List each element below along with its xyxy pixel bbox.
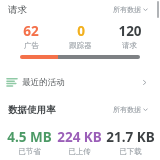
staticText: 所有数据 (113, 105, 141, 114)
button[interactable]: 所有数据 (111, 3, 150, 16)
staticText: 62 (23, 22, 39, 40)
staticText: 最近的活动 (22, 77, 65, 88)
staticText: 请求 (8, 4, 27, 16)
staticText: 120 (118, 22, 142, 40)
staticText: 所有数据 (113, 5, 141, 14)
staticText: 已上传 (68, 147, 91, 156)
staticText: 跟踪器 (69, 41, 92, 50)
button[interactable]: 224 KB (54, 128, 105, 156)
other: 打开最近的活动 (141, 79, 148, 86)
staticText: 已下载 (119, 147, 142, 156)
button[interactable]: 120 (105, 22, 154, 50)
button[interactable]: 0 (56, 22, 105, 50)
staticText: 0 (77, 22, 85, 40)
button[interactable]: 4.5 MB (4, 128, 54, 156)
staticText: 4.5 MB (7, 128, 52, 146)
button[interactable]: 21.7 KB (105, 128, 156, 156)
button[interactable]: 所有数据 (111, 103, 150, 116)
staticText: 224 KB (57, 128, 102, 146)
staticText: 广告 (24, 41, 39, 50)
button[interactable]: 62 (6, 22, 56, 50)
button[interactable]: 最近的活动 (0, 71, 160, 93)
staticText: 请求 (122, 41, 137, 50)
staticText: 数据使用率 (8, 104, 56, 116)
staticText: 21.7 KB (106, 128, 155, 146)
staticText: 已节省 (18, 147, 41, 156)
